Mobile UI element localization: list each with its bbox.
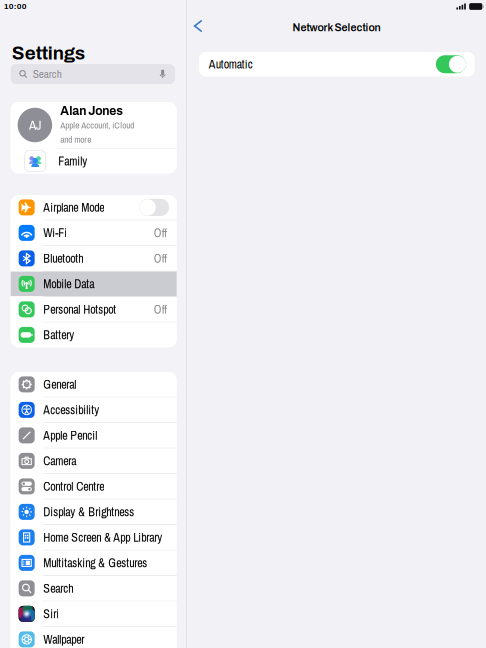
staticText: Search bbox=[43, 580, 73, 596]
staticText: AJ bbox=[29, 116, 41, 134]
button[interactable]: Family bbox=[11, 149, 177, 173]
staticText: Home Screen & App Library bbox=[43, 529, 162, 545]
staticText: Siri bbox=[43, 606, 59, 622]
button[interactable]: Bluetooth bbox=[11, 246, 177, 271]
button[interactable]: AJ bbox=[11, 102, 177, 148]
button[interactable]: Search bbox=[11, 576, 177, 601]
button[interactable]: General bbox=[11, 372, 177, 397]
staticText: Settings bbox=[12, 43, 85, 63]
staticText: Off bbox=[154, 301, 167, 317]
staticText: Wi-Fi bbox=[43, 225, 67, 241]
staticText: Wallpaper bbox=[43, 631, 84, 647]
staticText: Search bbox=[33, 66, 62, 82]
staticText: and more bbox=[60, 133, 91, 146]
staticText: Apple Pencil bbox=[43, 427, 97, 443]
staticText: Camera bbox=[43, 453, 76, 469]
button[interactable]: Mobile Data bbox=[11, 271, 177, 296]
button[interactable]: Control Centre bbox=[11, 474, 177, 499]
staticText: Accessibility bbox=[43, 402, 99, 418]
staticText: Off bbox=[154, 225, 167, 241]
button[interactable]: Camera bbox=[11, 448, 177, 473]
staticText: Airplane Mode bbox=[43, 199, 104, 215]
staticText: Multitasking & Gestures bbox=[43, 555, 147, 571]
button[interactable]: Accessibility bbox=[11, 397, 177, 422]
button[interactable]: Airplane Mode bbox=[11, 195, 177, 220]
staticText: Display & Brightness bbox=[43, 504, 134, 520]
staticText: Automatic bbox=[209, 56, 253, 72]
button[interactable]: Display & Brightness bbox=[11, 499, 177, 524]
staticText: Bluetooth bbox=[43, 250, 83, 266]
button[interactable]: Wi-Fi bbox=[11, 220, 177, 245]
button[interactable]: Battery bbox=[11, 322, 177, 347]
staticText: Network Selection bbox=[293, 22, 381, 34]
button[interactable]: Multitasking & Gestures bbox=[11, 550, 177, 575]
staticText: 10:00 bbox=[4, 2, 27, 11]
staticText: Personal Hotspot bbox=[43, 301, 116, 317]
staticText: Off bbox=[154, 250, 167, 266]
button[interactable]: Automatic bbox=[199, 52, 475, 76]
button[interactable]: Home Screen & App Library bbox=[11, 525, 177, 550]
button[interactable]: Personal Hotspot bbox=[11, 297, 177, 322]
button[interactable]: Search bbox=[11, 64, 175, 84]
button[interactable]: Siri bbox=[11, 601, 177, 626]
button[interactable]: Wallpaper bbox=[11, 627, 177, 648]
staticText: Apple Account, iCloud bbox=[60, 119, 134, 132]
staticText: General bbox=[43, 376, 76, 392]
staticText: Control Centre bbox=[43, 478, 104, 494]
staticText: Battery bbox=[43, 327, 74, 343]
button[interactable]: Back bbox=[188, 16, 208, 36]
staticText: Alan Jones bbox=[60, 104, 123, 117]
button[interactable]: Apple Pencil bbox=[11, 423, 177, 448]
staticText: Family bbox=[58, 153, 87, 169]
staticText: Mobile Data bbox=[43, 276, 94, 292]
